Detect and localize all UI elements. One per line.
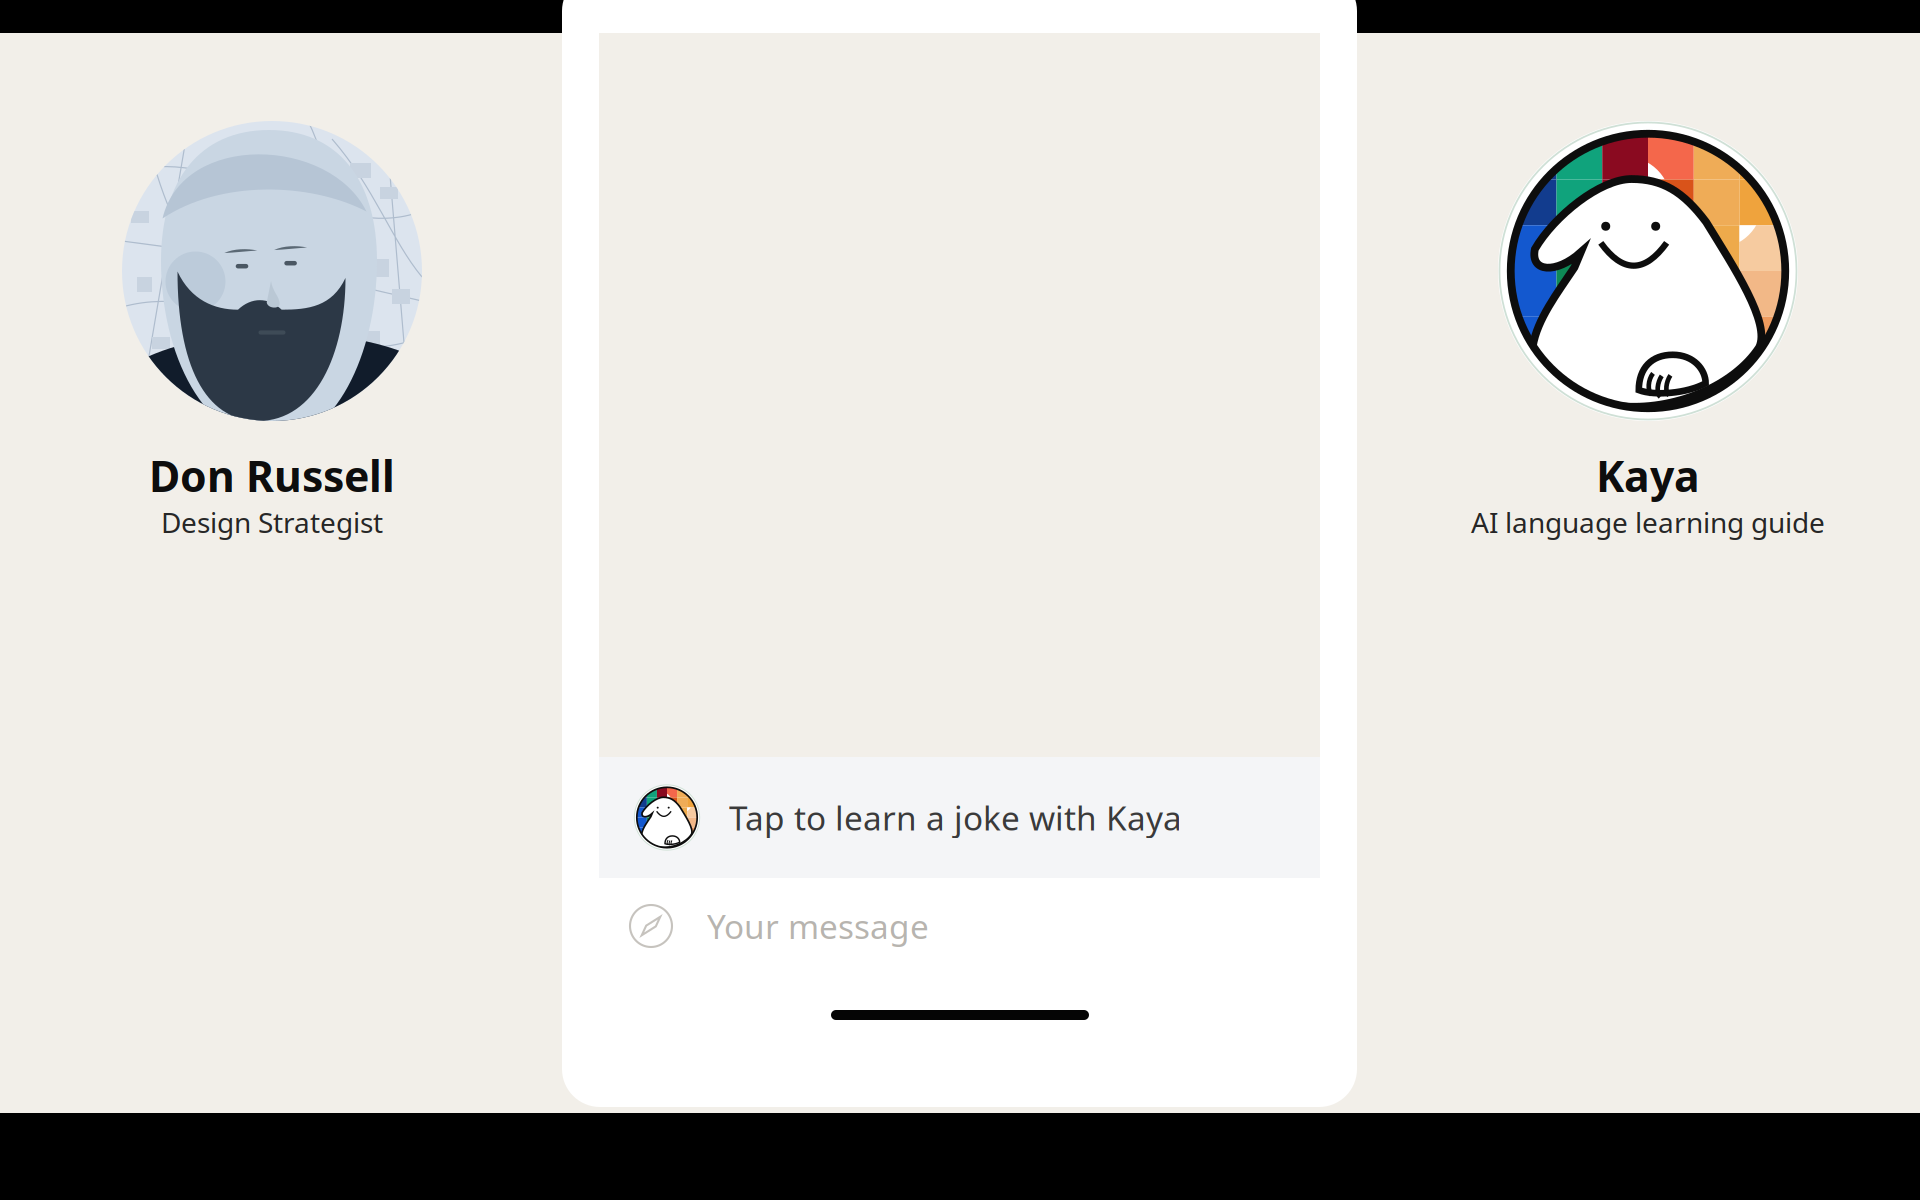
staticText: Don Russell (149, 447, 395, 504)
button[interactable]: Your message (599, 878, 1320, 974)
staticText: Your message (707, 904, 929, 948)
staticText: Design Strategist (161, 504, 383, 541)
staticText: AI language learning guide (1471, 504, 1825, 541)
button[interactable]: Tap to learn a joke with Kaya (599, 757, 1320, 878)
staticText: Tap to learn a joke with Kaya (729, 795, 1182, 840)
staticText: Kaya (1596, 447, 1700, 504)
